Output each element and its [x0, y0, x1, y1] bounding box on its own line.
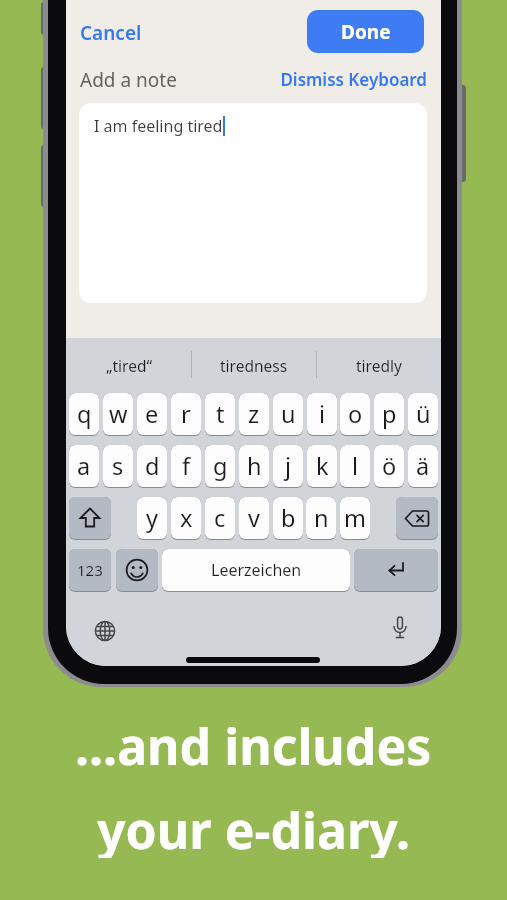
staticText: Done: [341, 19, 391, 45]
button[interactable]: f: [171, 445, 201, 488]
staticText: tiredness: [220, 355, 288, 376]
button[interactable]: w: [103, 393, 133, 436]
staticText: h: [247, 450, 262, 482]
button[interactable]: r: [171, 393, 201, 436]
button[interactable]: ö: [374, 445, 404, 488]
staticText: 123: [77, 560, 103, 580]
button[interactable]: o: [340, 393, 370, 436]
staticText: y: [146, 502, 158, 534]
button[interactable]: t: [205, 393, 235, 436]
staticText: Dismiss Keyboard: [226, 68, 427, 91]
staticText: tiredly: [356, 355, 402, 376]
staticText: Leerzeichen: [211, 559, 302, 581]
staticText: f: [182, 450, 191, 482]
button[interactable]: n: [306, 497, 336, 540]
staticText: m: [344, 502, 366, 534]
button[interactable]: j: [273, 445, 303, 488]
staticText: i: [319, 398, 326, 430]
button[interactable]: c: [205, 497, 235, 540]
staticText: e: [145, 398, 159, 430]
staticText: a: [77, 450, 91, 482]
button[interactable]: tiredly: [323, 353, 434, 377]
button[interactable]: a: [69, 445, 99, 488]
button[interactable]: [94, 620, 116, 642]
button[interactable]: [116, 549, 158, 592]
button[interactable]: v: [239, 497, 269, 540]
button[interactable]: e: [137, 393, 167, 436]
staticText: q: [77, 398, 92, 430]
staticText: p: [382, 398, 397, 430]
button[interactable]: 123: [69, 549, 111, 592]
staticText: d: [145, 450, 160, 482]
button[interactable]: m: [340, 497, 370, 540]
button[interactable]: „tired“: [73, 353, 184, 377]
staticText: x: [180, 502, 193, 534]
staticText: j: [285, 450, 292, 482]
button[interactable]: b: [273, 497, 303, 540]
button[interactable]: d: [137, 445, 167, 488]
button[interactable]: g: [205, 445, 235, 488]
button[interactable]: tiredness: [198, 353, 309, 377]
staticText: z: [248, 398, 260, 430]
button[interactable]: u: [273, 393, 303, 436]
button[interactable]: [391, 616, 409, 642]
button[interactable]: I am feeling tired: [79, 103, 427, 303]
staticText: u: [281, 398, 296, 430]
staticText: s: [112, 450, 124, 482]
staticText: ö: [382, 450, 397, 482]
staticText: o: [348, 398, 363, 430]
staticText: b: [281, 502, 296, 534]
button[interactable]: [354, 549, 438, 592]
button[interactable]: k: [307, 445, 337, 488]
button[interactable]: s: [103, 445, 133, 488]
button[interactable]: ä: [408, 445, 438, 488]
button[interactable]: Done: [307, 10, 424, 53]
staticText: c: [214, 502, 226, 534]
staticText: v: [248, 502, 260, 534]
staticText: n: [314, 502, 329, 534]
staticText: „tired“: [106, 355, 152, 376]
button[interactable]: y: [137, 497, 167, 540]
button[interactable]: z: [239, 393, 269, 436]
staticText: your e-diary.: [97, 796, 410, 858]
staticText: r: [181, 398, 191, 430]
staticText: g: [213, 450, 228, 482]
staticText: w: [109, 398, 128, 430]
button[interactable]: Leerzeichen: [162, 549, 350, 592]
button[interactable]: l: [340, 445, 370, 488]
button[interactable]: h: [239, 445, 269, 488]
button[interactable]: [396, 497, 438, 540]
button[interactable]: Dismiss Keyboard: [226, 68, 427, 91]
staticText: l: [352, 450, 359, 482]
staticText: Add a note: [80, 67, 177, 93]
button[interactable]: p: [374, 393, 404, 436]
staticText: t: [216, 398, 225, 430]
button[interactable]: q: [69, 393, 99, 436]
staticText: ä: [416, 450, 430, 482]
button[interactable]: x: [171, 497, 201, 540]
button[interactable]: i: [307, 393, 337, 436]
button[interactable]: ü: [408, 393, 438, 436]
staticText: ...and includes: [75, 712, 432, 774]
button[interactable]: [69, 497, 111, 540]
staticText: k: [316, 450, 329, 482]
staticText: ü: [416, 398, 431, 430]
staticText: I am feeling tired: [94, 115, 223, 137]
